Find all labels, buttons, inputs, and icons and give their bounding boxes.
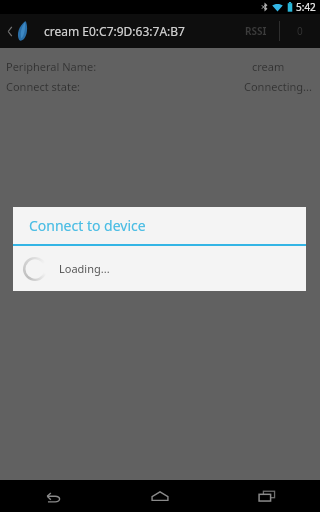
button[interactable]: 0 (280, 14, 320, 48)
staticText: Connect state: (6, 79, 81, 94)
staticText: Connecting... (244, 79, 312, 94)
staticText: RSSI (245, 24, 267, 38)
staticText: 5:42 (296, 0, 316, 14)
button[interactable]: RSSI (233, 14, 279, 48)
staticText: Loading... (59, 261, 110, 276)
staticText: Peripheral Name: (6, 59, 97, 74)
button[interactable]: Back (0, 480, 106, 512)
button[interactable]: Back (0, 14, 38, 48)
button[interactable]: Home (106, 480, 213, 512)
staticText: Connect to device (29, 216, 146, 235)
staticText: cream E0:C7:9D:63:7A:B7 (44, 23, 185, 39)
staticText: cream (252, 59, 285, 74)
staticText: 0 (297, 24, 303, 38)
button[interactable]: Recents (213, 480, 320, 512)
